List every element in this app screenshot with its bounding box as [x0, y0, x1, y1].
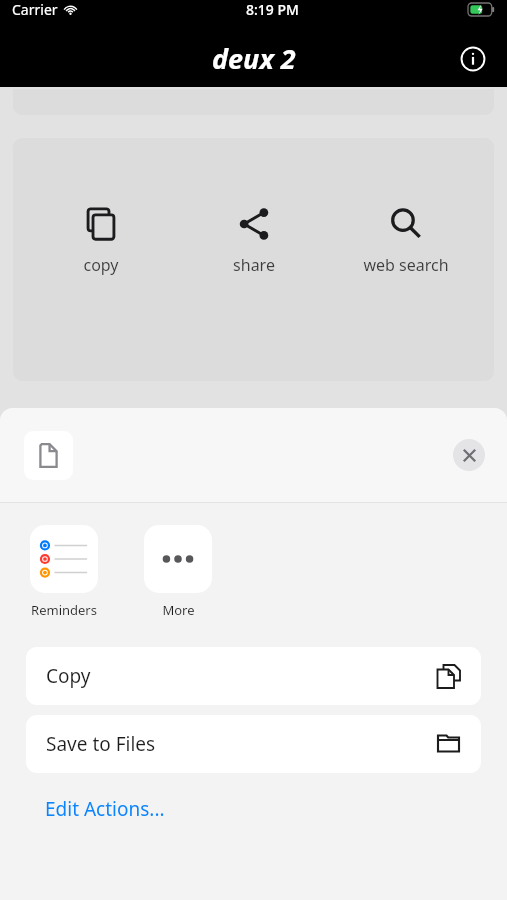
button[interactable]: share	[189, 201, 319, 280]
button[interactable]: web search	[341, 201, 471, 280]
staticText: Save to Files	[46, 731, 156, 757]
staticText: Carrier	[12, 0, 58, 19]
staticText: Edit Actions...	[45, 796, 165, 822]
button[interactable]: Reminders	[26, 525, 102, 619]
button[interactable]: Close	[453, 439, 485, 471]
staticText: copy	[83, 254, 119, 276]
staticText: Copy	[46, 663, 91, 689]
staticText: More	[162, 601, 195, 619]
button[interactable]: More	[140, 525, 216, 619]
button[interactable]: Save to Files	[26, 715, 481, 773]
button[interactable]: copy	[36, 201, 166, 280]
staticText: deux 2	[212, 40, 296, 77]
button[interactable]: Edit Actions...	[0, 794, 507, 832]
staticText: Reminders	[31, 601, 97, 619]
button[interactable]: Copy	[26, 647, 481, 705]
staticText: 8:19 PM	[246, 0, 299, 19]
staticText: web search	[363, 254, 449, 276]
staticText: share	[233, 254, 275, 276]
button[interactable]: Info	[453, 39, 493, 79]
button[interactable]: Document	[24, 431, 73, 480]
